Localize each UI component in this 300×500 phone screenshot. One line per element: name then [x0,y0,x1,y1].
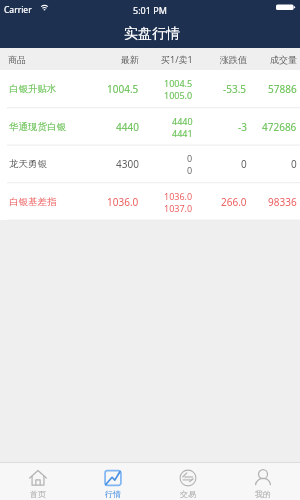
staticText: 商品 [8,54,85,65]
button[interactable]: 白银基差指 [0,183,300,221]
staticText: 华通现货白银 [9,121,85,133]
staticText: 交易 [180,489,196,499]
staticText: 0 [187,152,193,164]
staticText: 4440 [116,120,139,134]
staticText: 1036.0 [107,195,139,209]
staticText: 266.0 [221,195,247,209]
staticText: 涨跌值 [220,54,247,65]
button[interactable]: 白银升贴水 [0,70,300,108]
staticText: 1004.5 [164,77,193,89]
button[interactable]: Quotes [75,463,150,500]
staticText: 成交量 [270,54,297,65]
button[interactable]: 华通现货白银 [0,108,300,146]
staticText: 98336 [268,195,297,209]
staticText: -53.5 [223,82,247,96]
staticText: 5:01 PM [133,4,167,16]
staticText: -3 [238,120,247,134]
staticText: 龙天勇银 [9,158,85,170]
staticText: 1004.5 [107,82,139,96]
button[interactable]: Home [0,463,75,500]
staticText: 57886 [268,82,297,96]
staticText: 行情 [105,489,121,499]
staticText: 最新 [121,54,139,65]
staticText: 472686 [262,120,297,134]
staticText: 首页 [30,489,46,499]
staticText: 4300 [116,157,139,171]
staticText: 1036.0 [164,190,193,202]
staticText: 0 [241,157,247,171]
staticText: 4441 [172,127,193,139]
staticText: 实盘行情 [124,25,180,43]
staticText: 0 [187,164,193,176]
button[interactable]: Trade [150,463,225,500]
staticText: 白银基差指 [9,196,85,208]
button[interactable]: 龙天勇银 [0,145,300,183]
staticText: 买1/卖1 [161,53,193,65]
staticText: 白银升贴水 [9,83,85,95]
staticText: Carrier [4,4,32,16]
button[interactable]: Profile [225,463,300,500]
staticText: 0 [291,157,297,171]
staticText: 1037.0 [164,202,193,214]
staticText: 我的 [255,489,271,499]
staticText: 4440 [172,115,193,127]
staticText: 1005.0 [164,89,193,101]
